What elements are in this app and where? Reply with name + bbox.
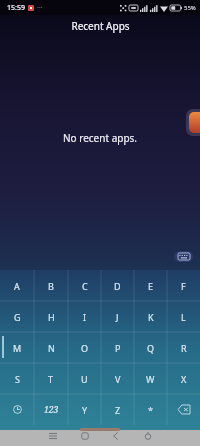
button[interactable]: F	[167, 270, 200, 301]
button[interactable]: O	[68, 332, 101, 363]
staticText: L	[181, 311, 186, 323]
staticText: 15:59	[7, 3, 25, 13]
button[interactable]: G	[0, 301, 34, 332]
button[interactable]: Y	[68, 394, 101, 425]
staticText: R	[181, 342, 187, 354]
button[interactable]: *	[134, 394, 167, 425]
button[interactable]: R	[167, 332, 200, 363]
staticText: Y	[82, 404, 88, 416]
staticText: A	[14, 280, 20, 292]
button[interactable]: I	[68, 301, 101, 332]
staticText: V	[115, 373, 121, 385]
button[interactable]: X	[167, 363, 200, 394]
staticText: H	[48, 311, 55, 323]
staticText: D	[114, 280, 121, 292]
staticText: Recent Apps	[71, 19, 130, 33]
button[interactable]: U	[68, 363, 101, 394]
staticText: 123	[44, 404, 59, 416]
button[interactable]: L	[167, 301, 200, 332]
button[interactable]: Z	[101, 394, 134, 425]
button[interactable]: 123	[34, 394, 68, 425]
staticText: M	[13, 342, 22, 354]
button[interactable]: P	[101, 332, 134, 363]
staticText: F	[181, 280, 186, 292]
button[interactable]: D	[101, 270, 134, 301]
staticText: N	[48, 342, 55, 354]
button[interactable]: K	[134, 301, 167, 332]
button[interactable]: Assistant	[141, 429, 154, 442]
button[interactable]: S	[0, 363, 34, 394]
staticText: G	[14, 311, 21, 323]
button[interactable]: W	[134, 363, 167, 394]
button[interactable]: Home	[78, 429, 91, 442]
staticText: 55%	[184, 4, 196, 12]
staticText: B	[48, 280, 54, 292]
button[interactable]: Backspace	[167, 394, 200, 425]
staticText: O	[81, 342, 89, 354]
button[interactable]: H	[34, 301, 68, 332]
staticText: Q	[147, 342, 155, 354]
button[interactable]: J	[101, 301, 134, 332]
staticText: W	[146, 373, 155, 385]
staticText: ···	[37, 3, 43, 13]
staticText: E	[148, 280, 154, 292]
staticText: J	[116, 311, 119, 323]
button[interactable]: E	[134, 270, 167, 301]
staticText: C	[82, 280, 88, 292]
button[interactable]: T	[34, 363, 68, 394]
staticText: P	[115, 342, 121, 354]
button[interactable]: Q	[134, 332, 167, 363]
staticText: U	[81, 373, 88, 385]
button[interactable]: Recent symbols	[0, 394, 34, 425]
button[interactable]: Recents	[46, 429, 59, 442]
staticText: T	[48, 373, 54, 385]
staticText: K	[148, 311, 154, 323]
staticText: S	[15, 373, 20, 385]
button[interactable]: M	[0, 332, 34, 363]
button[interactable]: Show keyboard	[174, 251, 193, 262]
staticText: *	[148, 404, 153, 416]
button[interactable]: B	[34, 270, 68, 301]
staticText: X	[181, 373, 187, 385]
button[interactable]: Back	[109, 429, 122, 442]
staticText: Z	[115, 404, 121, 416]
staticText: I	[83, 311, 87, 323]
button[interactable]: C	[68, 270, 101, 301]
button[interactable]: V	[101, 363, 134, 394]
button[interactable]: N	[34, 332, 68, 363]
staticText: No recent apps.	[63, 131, 138, 145]
button[interactable]: Floating app bubble	[186, 109, 200, 136]
button[interactable]: A	[0, 270, 34, 301]
